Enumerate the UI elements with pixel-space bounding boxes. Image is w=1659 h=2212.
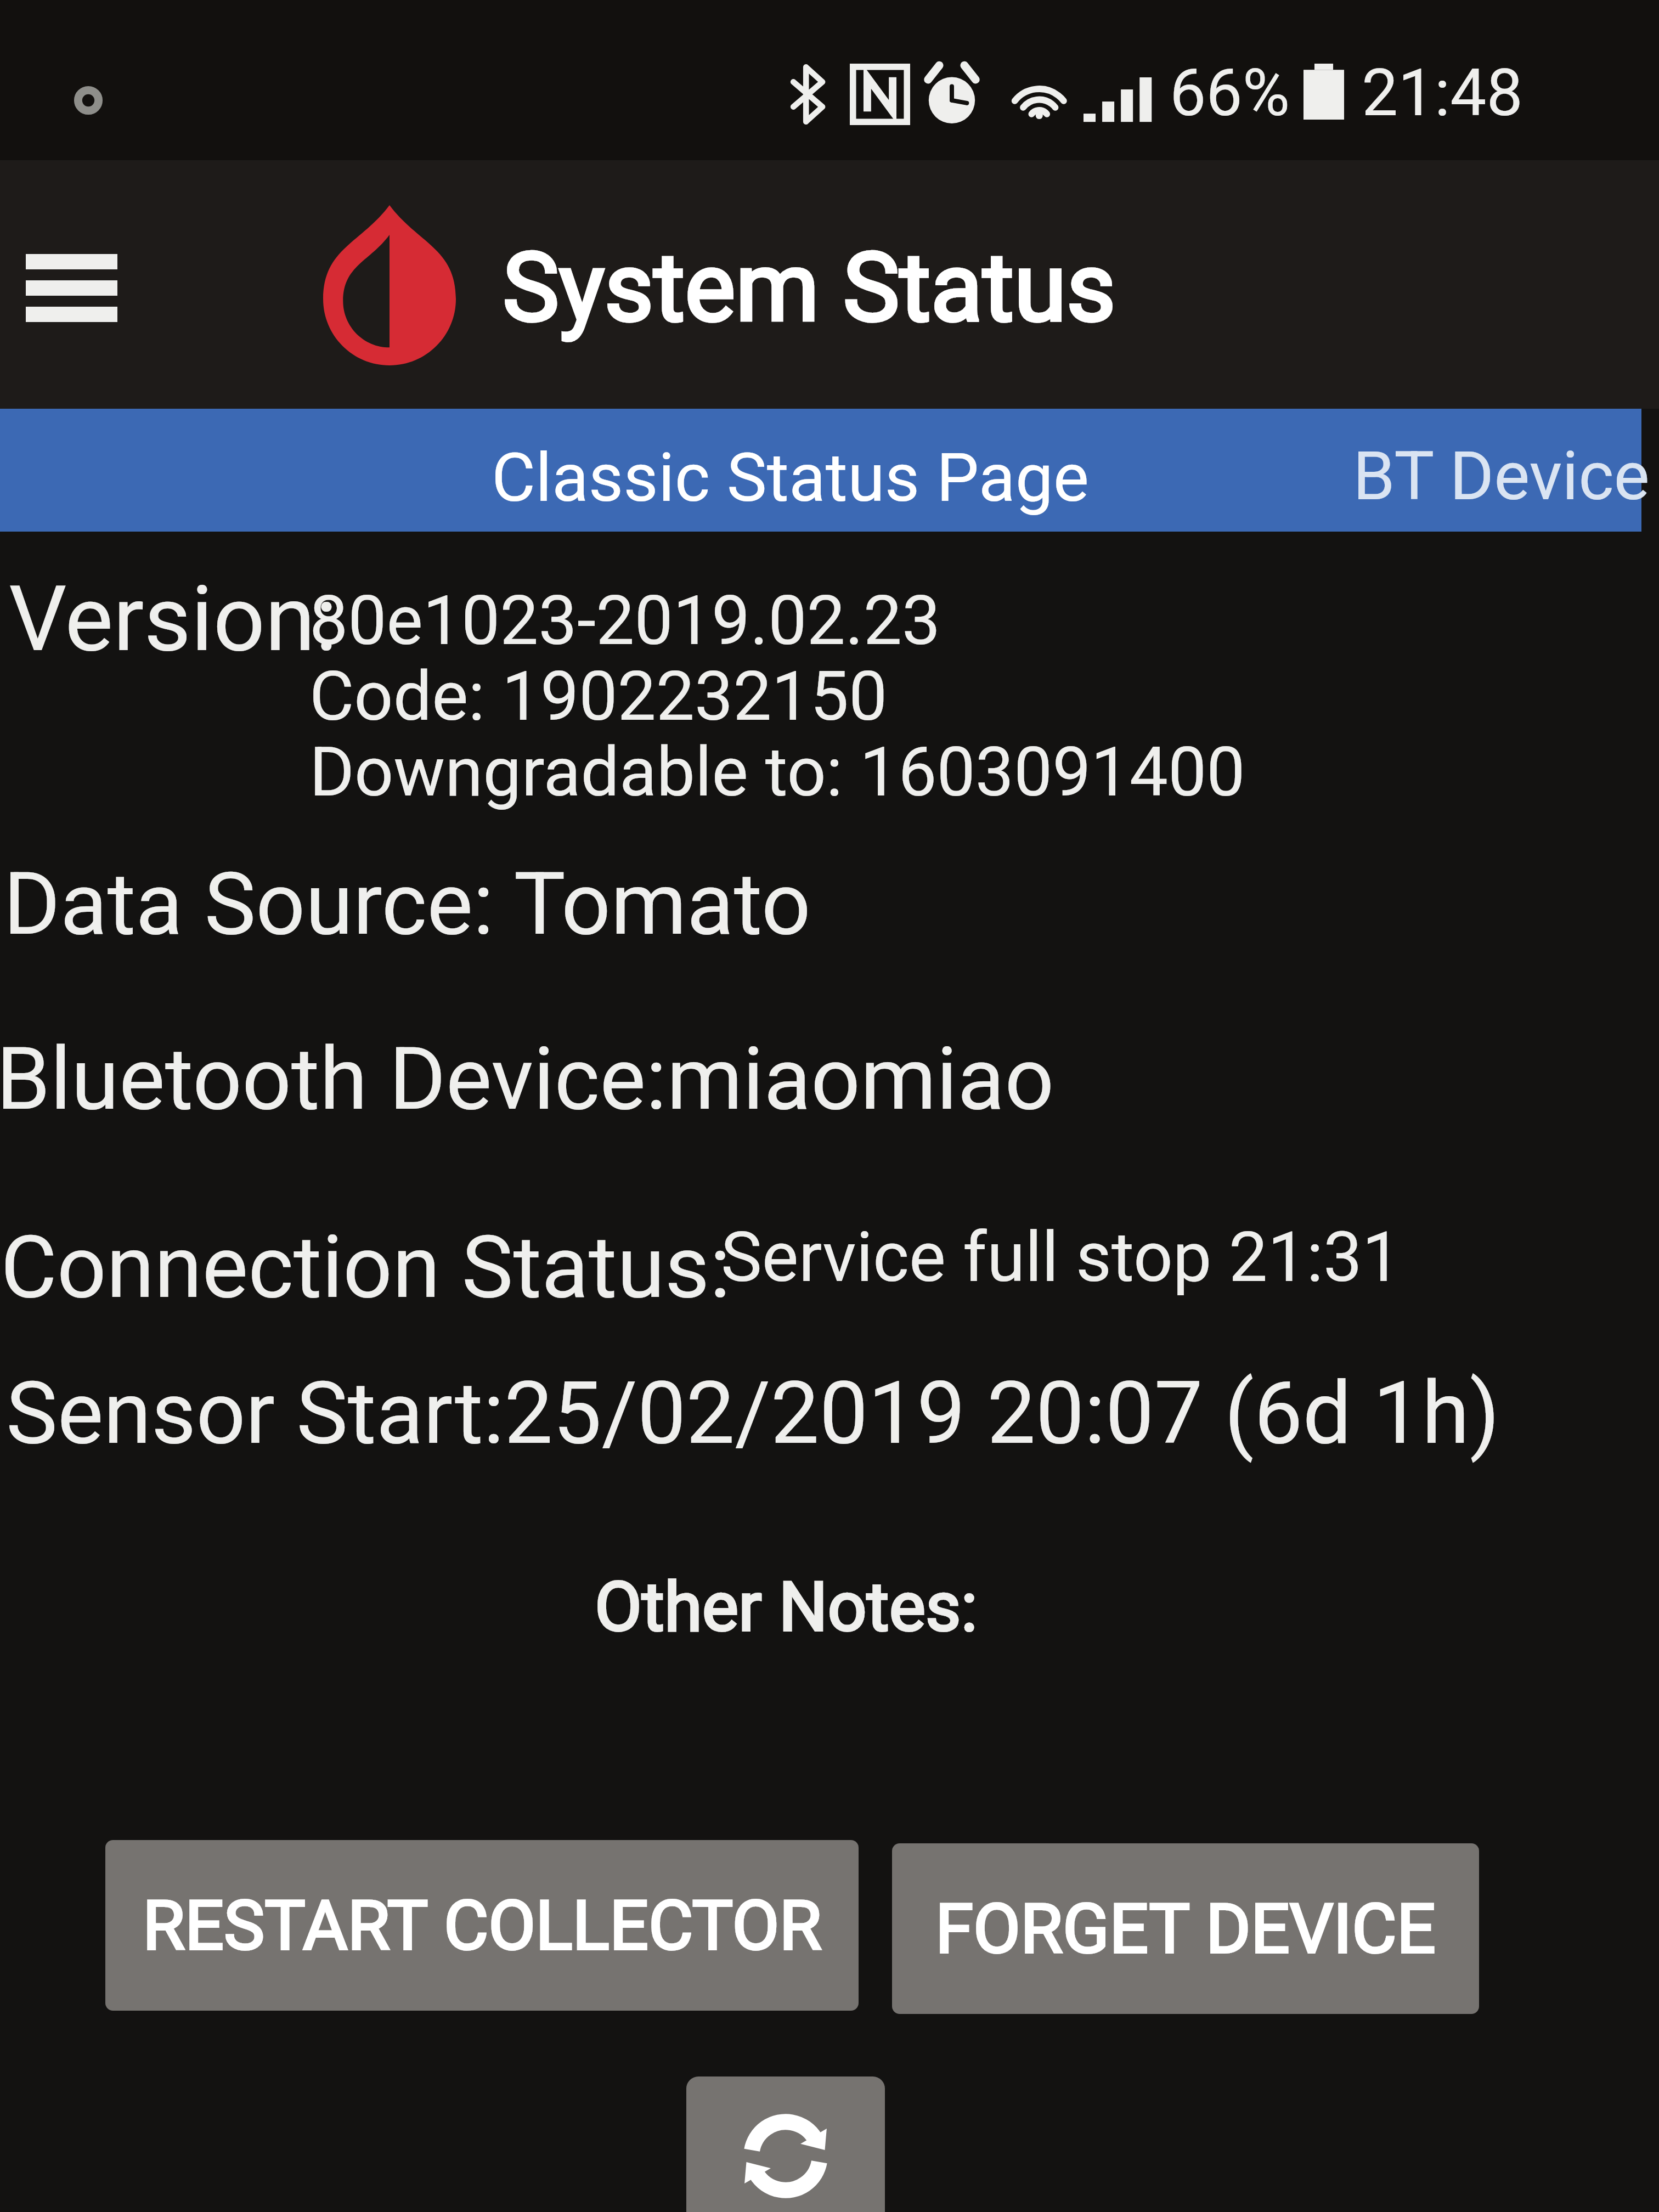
staticText: System Status: [503, 232, 1116, 344]
button[interactable]: RESTART COLLECTOR: [105, 1840, 859, 2011]
button[interactable]: Open navigation menu: [0, 187, 143, 390]
button[interactable]: Refresh: [686, 2076, 885, 2212]
button[interactable]: FORGET DEVICE: [892, 1843, 1479, 2014]
button[interactable]: BT Device: [1317, 409, 1641, 532]
staticText: 21:48: [1362, 55, 1523, 131]
staticText: FORGET DEVICE: [935, 1889, 1436, 1969]
staticText: RESTART COLLECTOR: [143, 1886, 822, 1966]
staticText: BT Device: [1353, 437, 1650, 516]
staticText: Other Notes:: [595, 1567, 978, 1647]
button[interactable]: Classic Status Page: [263, 409, 1317, 532]
staticText: Service full stop 21:31: [721, 1217, 1401, 1298]
staticText: Data Source: Tomato: [3, 853, 811, 955]
staticText: Classic Status Page: [492, 438, 1089, 517]
staticText: Version:: [9, 566, 337, 673]
staticText: Bluetooth Device:miaomiao: [0, 1028, 1054, 1130]
staticText: Connection Status:: [1, 1216, 731, 1318]
staticText: 80e1023-2019.02.23 Code: 1902232150 Down…: [309, 580, 1245, 812]
staticText: 66%: [1170, 55, 1290, 131]
staticText: Sensor Start:25/02/2019 20:07 (6d 1h): [6, 1362, 1500, 1464]
